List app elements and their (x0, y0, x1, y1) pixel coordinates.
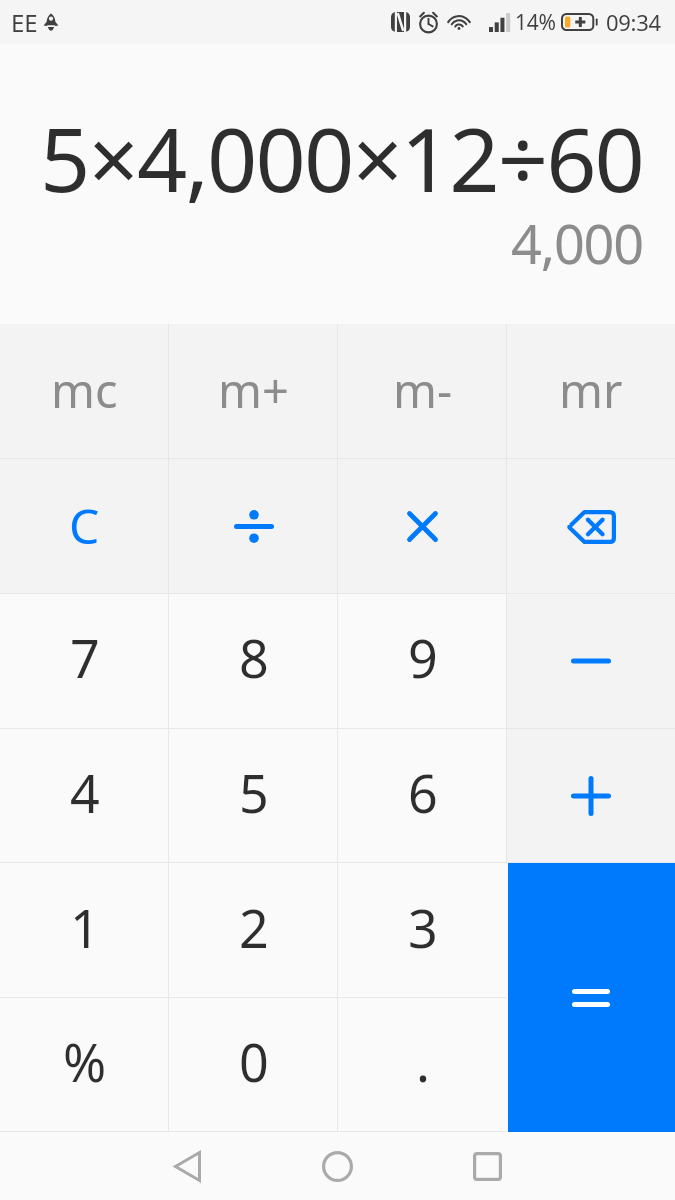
staticText: m- (393, 358, 453, 422)
button[interactable]: 3 (338, 863, 507, 998)
staticText: 1 (70, 892, 100, 963)
staticText: 6 (408, 757, 438, 828)
button[interactable]: 0 (169, 997, 338, 1132)
staticText: 2 (239, 892, 269, 963)
staticText: % (63, 1026, 107, 1097)
button[interactable]: 7 (0, 593, 169, 728)
button[interactable]: C (0, 459, 169, 594)
button[interactable]: m- (338, 324, 507, 459)
staticText: 8 (239, 622, 269, 693)
button[interactable]: . (338, 997, 507, 1132)
staticText: 09:34 (606, 7, 661, 37)
button[interactable]: Home (301, 1132, 373, 1200)
button[interactable]: 6 (338, 728, 507, 863)
button[interactable]: Minus (506, 593, 675, 728)
button[interactable]: Recents (451, 1132, 523, 1200)
button[interactable]: 2 (169, 863, 338, 998)
staticText: . (416, 1026, 430, 1097)
staticText: 4 (70, 757, 100, 828)
staticText: 7 (70, 622, 100, 693)
staticText: m+ (218, 358, 289, 422)
staticText: 5 (239, 757, 269, 828)
staticText: mc (51, 358, 118, 422)
staticText: 14% (515, 8, 556, 37)
button[interactable]: 4 (0, 728, 169, 863)
staticText: 3 (408, 892, 438, 963)
button[interactable]: % (0, 997, 169, 1132)
staticText: 5×4,000×12÷60 (40, 98, 643, 218)
staticText: 0 (239, 1026, 269, 1097)
button[interactable]: mr (506, 324, 675, 459)
staticText: EE (11, 6, 38, 39)
button[interactable]: Backspace (506, 459, 675, 594)
button[interactable]: Back (151, 1132, 223, 1200)
button[interactable]: Plus (506, 728, 675, 863)
button[interactable]: 5 (169, 728, 338, 863)
button[interactable]: Multiply (338, 459, 507, 594)
button[interactable]: 1 (0, 863, 169, 998)
staticText: C (69, 493, 100, 558)
staticText: mr (559, 358, 623, 422)
staticText: 4,000 (510, 206, 643, 280)
button[interactable]: Divide (169, 459, 338, 594)
button[interactable]: mc (0, 324, 169, 459)
button[interactable]: Equals (506, 863, 675, 1132)
button[interactable]: 9 (338, 593, 507, 728)
button[interactable]: 8 (169, 593, 338, 728)
button[interactable]: m+ (169, 324, 338, 459)
staticText: 9 (408, 622, 438, 693)
